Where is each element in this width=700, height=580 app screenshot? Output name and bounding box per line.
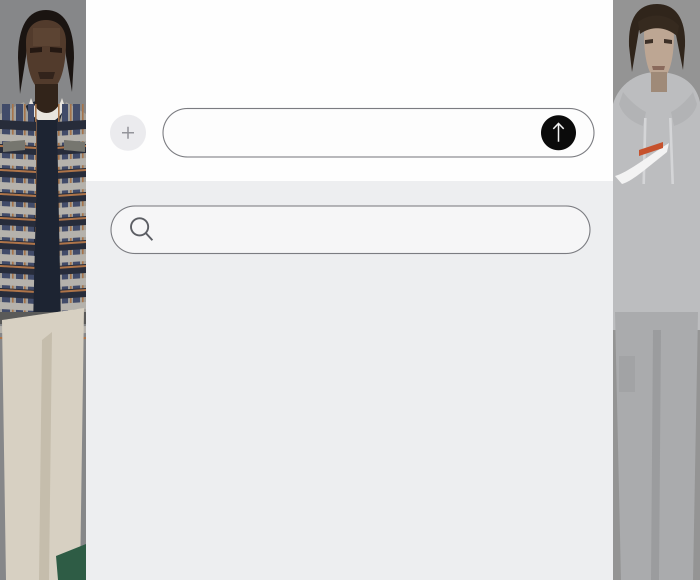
button[interactable]: Add attachment: [110, 115, 146, 151]
button[interactable]: Search: [111, 206, 590, 253]
button[interactable]: Message: [163, 108, 594, 157]
